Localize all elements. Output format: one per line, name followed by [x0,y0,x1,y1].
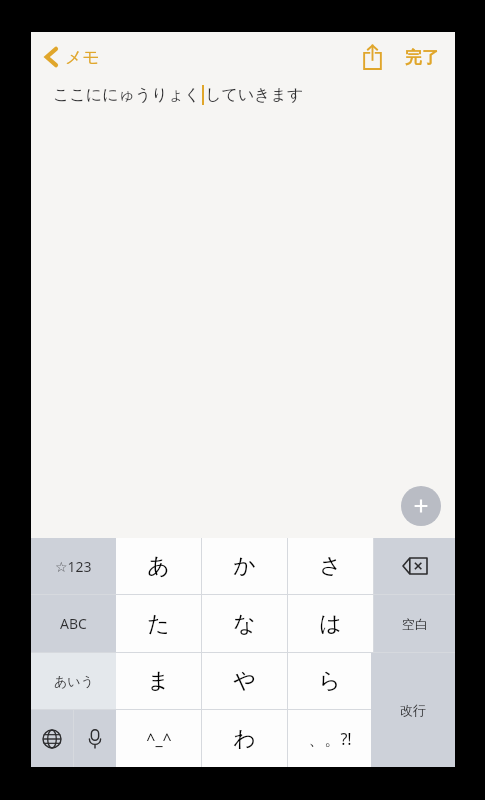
staticText: 空白 [402,616,428,632]
button[interactable]: あ [116,538,201,594]
staticText: ☆123 [55,557,92,576]
button[interactable]: ら [288,653,371,709]
staticText: た [147,610,170,638]
staticText: メモ [65,47,100,68]
button[interactable]: Switch keyboard [31,710,73,767]
button[interactable]: た [116,595,201,652]
staticText: あいう [54,673,94,689]
staticText: な [233,610,256,638]
button[interactable]: 、。?! [288,710,371,767]
button[interactable]: や [202,653,287,709]
button[interactable]: な [202,595,287,652]
button[interactable]: ^_^ [116,710,201,767]
button[interactable]: Add attachment [401,486,441,526]
staticText: や [233,667,256,695]
button[interactable]: Delete [374,538,455,594]
button[interactable]: わ [202,710,287,767]
button[interactable]: メモ [41,41,103,73]
button[interactable]: は [288,595,373,652]
button[interactable]: 改行 [371,653,455,767]
staticText: ら [318,667,341,695]
button[interactable]: Dictation [74,710,116,767]
button[interactable]: ☆123 [31,538,116,594]
staticText: ま [147,667,170,695]
staticText: ^_^ [146,728,172,750]
button[interactable]: か [202,538,287,594]
staticText: 改行 [400,702,426,718]
staticText: していきます [205,85,304,105]
staticText: わ [233,725,256,753]
staticText: 完了 [405,47,439,68]
staticText: ここににゅうりょく [53,85,201,105]
staticText: は [319,610,342,638]
button[interactable]: Share [353,38,391,76]
staticText: か [233,552,256,580]
button[interactable]: さ [288,538,373,594]
button[interactable]: 完了 [399,41,445,74]
staticText: あ [147,552,170,580]
staticText: 、。?! [308,728,352,750]
button[interactable]: 空白 [374,595,455,652]
staticText: ABC [60,614,87,633]
button[interactable]: あいう [31,653,116,709]
staticText: さ [319,552,342,580]
button[interactable]: ま [116,653,201,709]
button[interactable]: ABC [31,595,116,652]
